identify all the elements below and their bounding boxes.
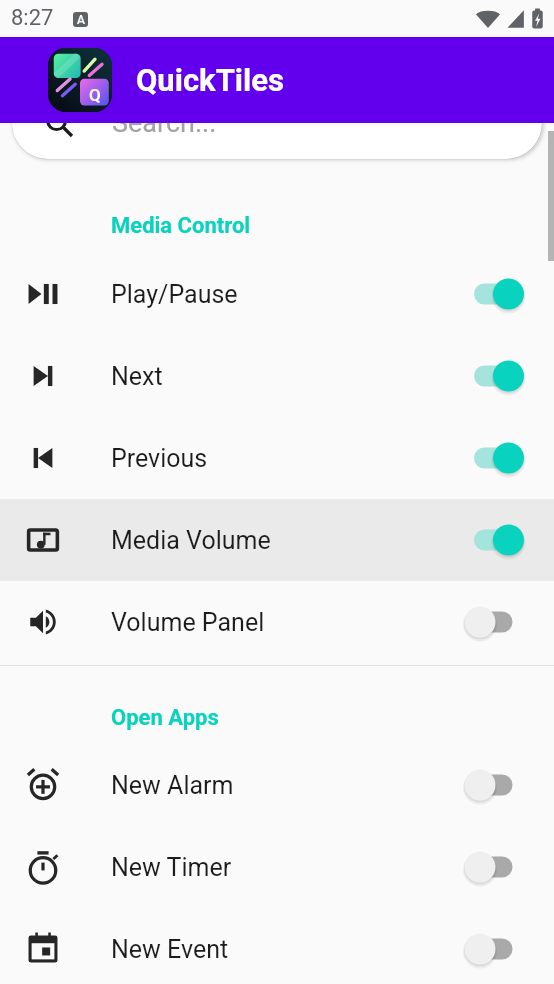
staticText: Search... [112,107,217,139]
staticText: Media Control [111,213,251,239]
staticText: QuickTiles [136,62,284,98]
button[interactable]: New Alarm [0,744,554,826]
staticText: New Timer [111,853,232,882]
button[interactable]: Media Volume [0,499,554,581]
staticText: Previous [111,444,208,473]
button[interactable]: Play/Pause [0,253,554,335]
staticText: Q [89,85,101,105]
button[interactable]: New Timer [0,826,554,908]
staticText: New Event [111,935,229,964]
staticText: Next [111,362,163,391]
button[interactable]: Previous [0,417,554,499]
staticText: Play/Pause [111,280,238,309]
button[interactable]: Next [0,335,554,417]
button[interactable]: New Event [0,908,554,984]
staticText: Media Volume [111,526,271,555]
button[interactable]: Search... [12,87,542,159]
staticText: New Alarm [111,771,234,800]
staticText: Open Apps [111,705,219,731]
button[interactable]: Volume Panel [0,581,554,663]
staticText: A [77,13,85,27]
staticText: Volume Panel [111,608,265,637]
staticText: 8:27 [11,5,54,31]
